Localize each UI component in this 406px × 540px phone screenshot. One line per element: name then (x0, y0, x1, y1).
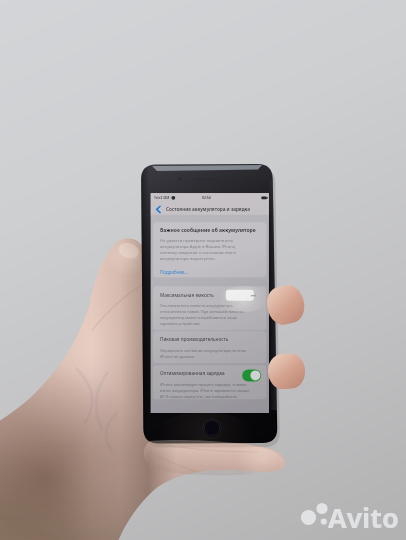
staticText: Оптимизированная зарядка (160, 370, 225, 376)
staticText: Подробнее… (160, 269, 189, 275)
staticText: Важное сообщение об аккумуляторе (160, 227, 256, 234)
staticText: Tele2 SIM (154, 195, 170, 199)
staticText: Пиковая производительность (160, 336, 229, 342)
staticText: Определить состояние аккумулятора на это… (160, 348, 252, 359)
staticText: Avito (328, 499, 399, 536)
staticText: Состояние аккумулятора и зарядка (166, 206, 250, 212)
staticText: Не удается проверить подлинность аккумул… (160, 237, 248, 261)
staticText: Это показатель емкости аккумулятора отно… (160, 303, 252, 326)
button[interactable]: Tele2 SIM (0, 0, 406, 540)
staticText: Максимальная емкость (160, 292, 214, 298)
staticText: iPhone анализирует процесс зарядки, сниж… (160, 382, 252, 399)
staticText: 02:54 (202, 195, 211, 200)
